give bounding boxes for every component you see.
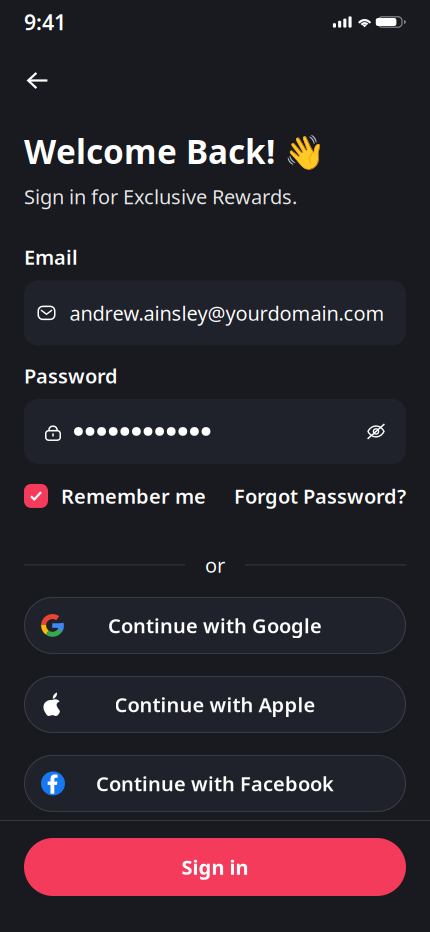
staticText: Sign in bbox=[181, 854, 248, 880]
staticText: Welcome Back! 👋 bbox=[24, 129, 326, 173]
staticText: Sign in for Exclusive Rewards. bbox=[24, 183, 297, 210]
button[interactable]: Sign in bbox=[24, 838, 406, 896]
button[interactable]: Continue with Facebook bbox=[24, 755, 406, 812]
button[interactable]: Continue with Apple bbox=[24, 676, 406, 733]
staticText: Continue with Facebook bbox=[96, 770, 334, 797]
staticText: Forgot Password? bbox=[234, 483, 406, 509]
staticText: Continue with Google bbox=[108, 612, 322, 639]
staticText: Email bbox=[24, 244, 78, 270]
staticText: andrew.ainsley@yourdomain.com bbox=[69, 300, 384, 326]
staticText: Remember me bbox=[61, 483, 206, 509]
button[interactable]: Show password bbox=[367, 423, 385, 439]
staticText: 9:41 bbox=[24, 8, 66, 36]
button[interactable]: Forgot Password? bbox=[234, 483, 406, 509]
button[interactable]: Back bbox=[24, 62, 68, 98]
button[interactable]: Remember me bbox=[24, 483, 206, 509]
staticText: Password bbox=[24, 362, 118, 389]
button[interactable]: Continue with Google bbox=[24, 597, 406, 654]
staticText: Continue with Apple bbox=[114, 691, 315, 718]
staticText: or bbox=[205, 552, 225, 578]
